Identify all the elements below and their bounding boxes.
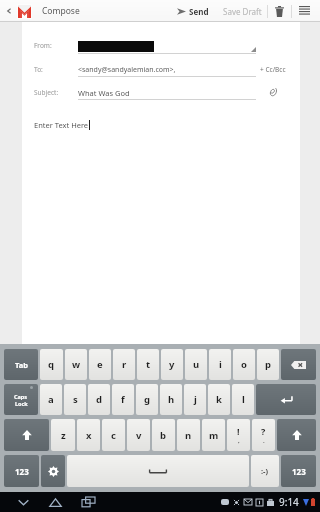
staticText: y bbox=[169, 358, 175, 371]
staticText: l bbox=[242, 393, 245, 406]
button[interactable]: Home bbox=[38, 492, 72, 512]
staticText: z bbox=[61, 429, 66, 442]
button[interactable]: l bbox=[232, 384, 254, 415]
button[interactable]: o bbox=[233, 349, 255, 380]
button[interactable]: v bbox=[127, 419, 150, 451]
button[interactable]: Hide keyboard bbox=[8, 492, 38, 512]
button[interactable]: a bbox=[40, 384, 62, 415]
staticText: ! bbox=[237, 425, 240, 437]
button[interactable]: Compose bbox=[3, 0, 86, 22]
button[interactable]: f bbox=[112, 384, 134, 415]
button[interactable]: + Cc/Bcc bbox=[256, 61, 290, 77]
button[interactable]: Delete draft bbox=[268, 0, 291, 22]
staticText: n bbox=[185, 429, 192, 442]
staticText: m bbox=[209, 429, 219, 442]
button[interactable]: More options bbox=[292, 0, 317, 22]
staticText: Save Draft bbox=[223, 6, 262, 17]
staticText: <sandy@sandyalemian.com>, bbox=[78, 65, 176, 75]
staticText: h bbox=[168, 393, 175, 406]
button[interactable]: n bbox=[177, 419, 200, 451]
staticText: o bbox=[241, 358, 247, 371]
button[interactable]: Recent apps bbox=[72, 492, 104, 512]
button[interactable]: z bbox=[51, 419, 75, 451]
staticText: Compose bbox=[42, 5, 80, 17]
button[interactable]: Subject: bbox=[34, 84, 256, 100]
button[interactable]: Caps bbox=[4, 384, 38, 415]
staticText: k bbox=[216, 393, 222, 406]
button[interactable]: Tab bbox=[4, 349, 38, 380]
button[interactable]: s bbox=[64, 384, 86, 415]
staticText: c bbox=[111, 429, 116, 442]
button[interactable]: b bbox=[152, 419, 175, 451]
button[interactable]: w bbox=[65, 349, 87, 380]
button[interactable]: Enter bbox=[256, 384, 316, 415]
button[interactable]: m bbox=[202, 419, 225, 451]
staticText: t bbox=[146, 358, 151, 371]
staticText: Caps bbox=[14, 393, 28, 400]
staticText: r bbox=[122, 358, 127, 371]
button[interactable]: y bbox=[161, 349, 183, 380]
staticText: 9:14 bbox=[279, 495, 299, 509]
button[interactable]: Enter Text Here bbox=[34, 120, 290, 344]
staticText: u bbox=[193, 358, 200, 371]
staticText: d bbox=[96, 393, 103, 406]
staticText: a bbox=[48, 393, 54, 406]
button[interactable]: :-) bbox=[251, 455, 279, 487]
staticText: :-) bbox=[261, 466, 269, 476]
staticText: Send bbox=[189, 6, 209, 17]
staticText: g bbox=[144, 393, 151, 406]
button[interactable]: ? bbox=[252, 419, 275, 451]
button[interactable]: x bbox=[77, 419, 100, 451]
staticText: i bbox=[219, 358, 222, 371]
staticText: w bbox=[72, 358, 81, 371]
button[interactable]: Attach file bbox=[256, 84, 290, 100]
button[interactable]: 123 bbox=[281, 455, 316, 487]
button[interactable]: Save Draft bbox=[218, 0, 267, 22]
staticText: Subject: bbox=[34, 88, 78, 97]
button[interactable]: p bbox=[257, 349, 279, 380]
staticText: j bbox=[194, 393, 197, 406]
button[interactable]: t bbox=[137, 349, 159, 380]
button[interactable]: ! bbox=[227, 419, 250, 451]
button[interactable]: c bbox=[102, 419, 125, 451]
button[interactable]: g bbox=[136, 384, 158, 415]
button[interactable]: r bbox=[113, 349, 135, 380]
staticText: , bbox=[238, 437, 240, 445]
staticText: Lock bbox=[15, 400, 28, 407]
staticText: s bbox=[73, 393, 78, 406]
button[interactable]: Space bbox=[67, 455, 249, 487]
button[interactable]: j bbox=[184, 384, 206, 415]
staticText: f bbox=[121, 393, 125, 406]
staticText: . bbox=[263, 437, 265, 445]
staticText: To: bbox=[34, 65, 78, 74]
button[interactable]: k bbox=[208, 384, 230, 415]
button[interactable]: Shift bbox=[277, 419, 316, 451]
staticText: p bbox=[265, 358, 272, 371]
button[interactable]: From: bbox=[34, 36, 290, 54]
staticText: + Cc/Bcc bbox=[260, 65, 286, 74]
button[interactable]: Send bbox=[172, 0, 214, 22]
staticText: Enter Text Here bbox=[34, 120, 89, 130]
button[interactable]: Keyboard settings bbox=[41, 455, 65, 487]
staticText: Tab bbox=[15, 360, 28, 370]
staticText: v bbox=[136, 429, 142, 442]
staticText: What Was God bbox=[78, 88, 130, 98]
staticText: ? bbox=[261, 425, 266, 437]
staticText: 123 bbox=[15, 466, 29, 477]
button[interactable]: i bbox=[209, 349, 231, 380]
button[interactable]: 123 bbox=[4, 455, 39, 487]
button[interactable]: h bbox=[160, 384, 182, 415]
staticText: q bbox=[48, 358, 55, 371]
staticText: 123 bbox=[292, 466, 306, 477]
button[interactable]: d bbox=[88, 384, 110, 415]
button[interactable]: e bbox=[89, 349, 111, 380]
button[interactable]: q bbox=[40, 349, 63, 380]
staticText: From: bbox=[34, 41, 78, 50]
staticText: e bbox=[97, 358, 103, 371]
button[interactable]: Shift bbox=[4, 419, 49, 451]
button[interactable]: u bbox=[185, 349, 207, 380]
button[interactable]: To: bbox=[34, 61, 256, 77]
button[interactable]: Backspace bbox=[281, 349, 316, 380]
staticText: x bbox=[86, 429, 92, 442]
staticText: b bbox=[160, 429, 167, 442]
